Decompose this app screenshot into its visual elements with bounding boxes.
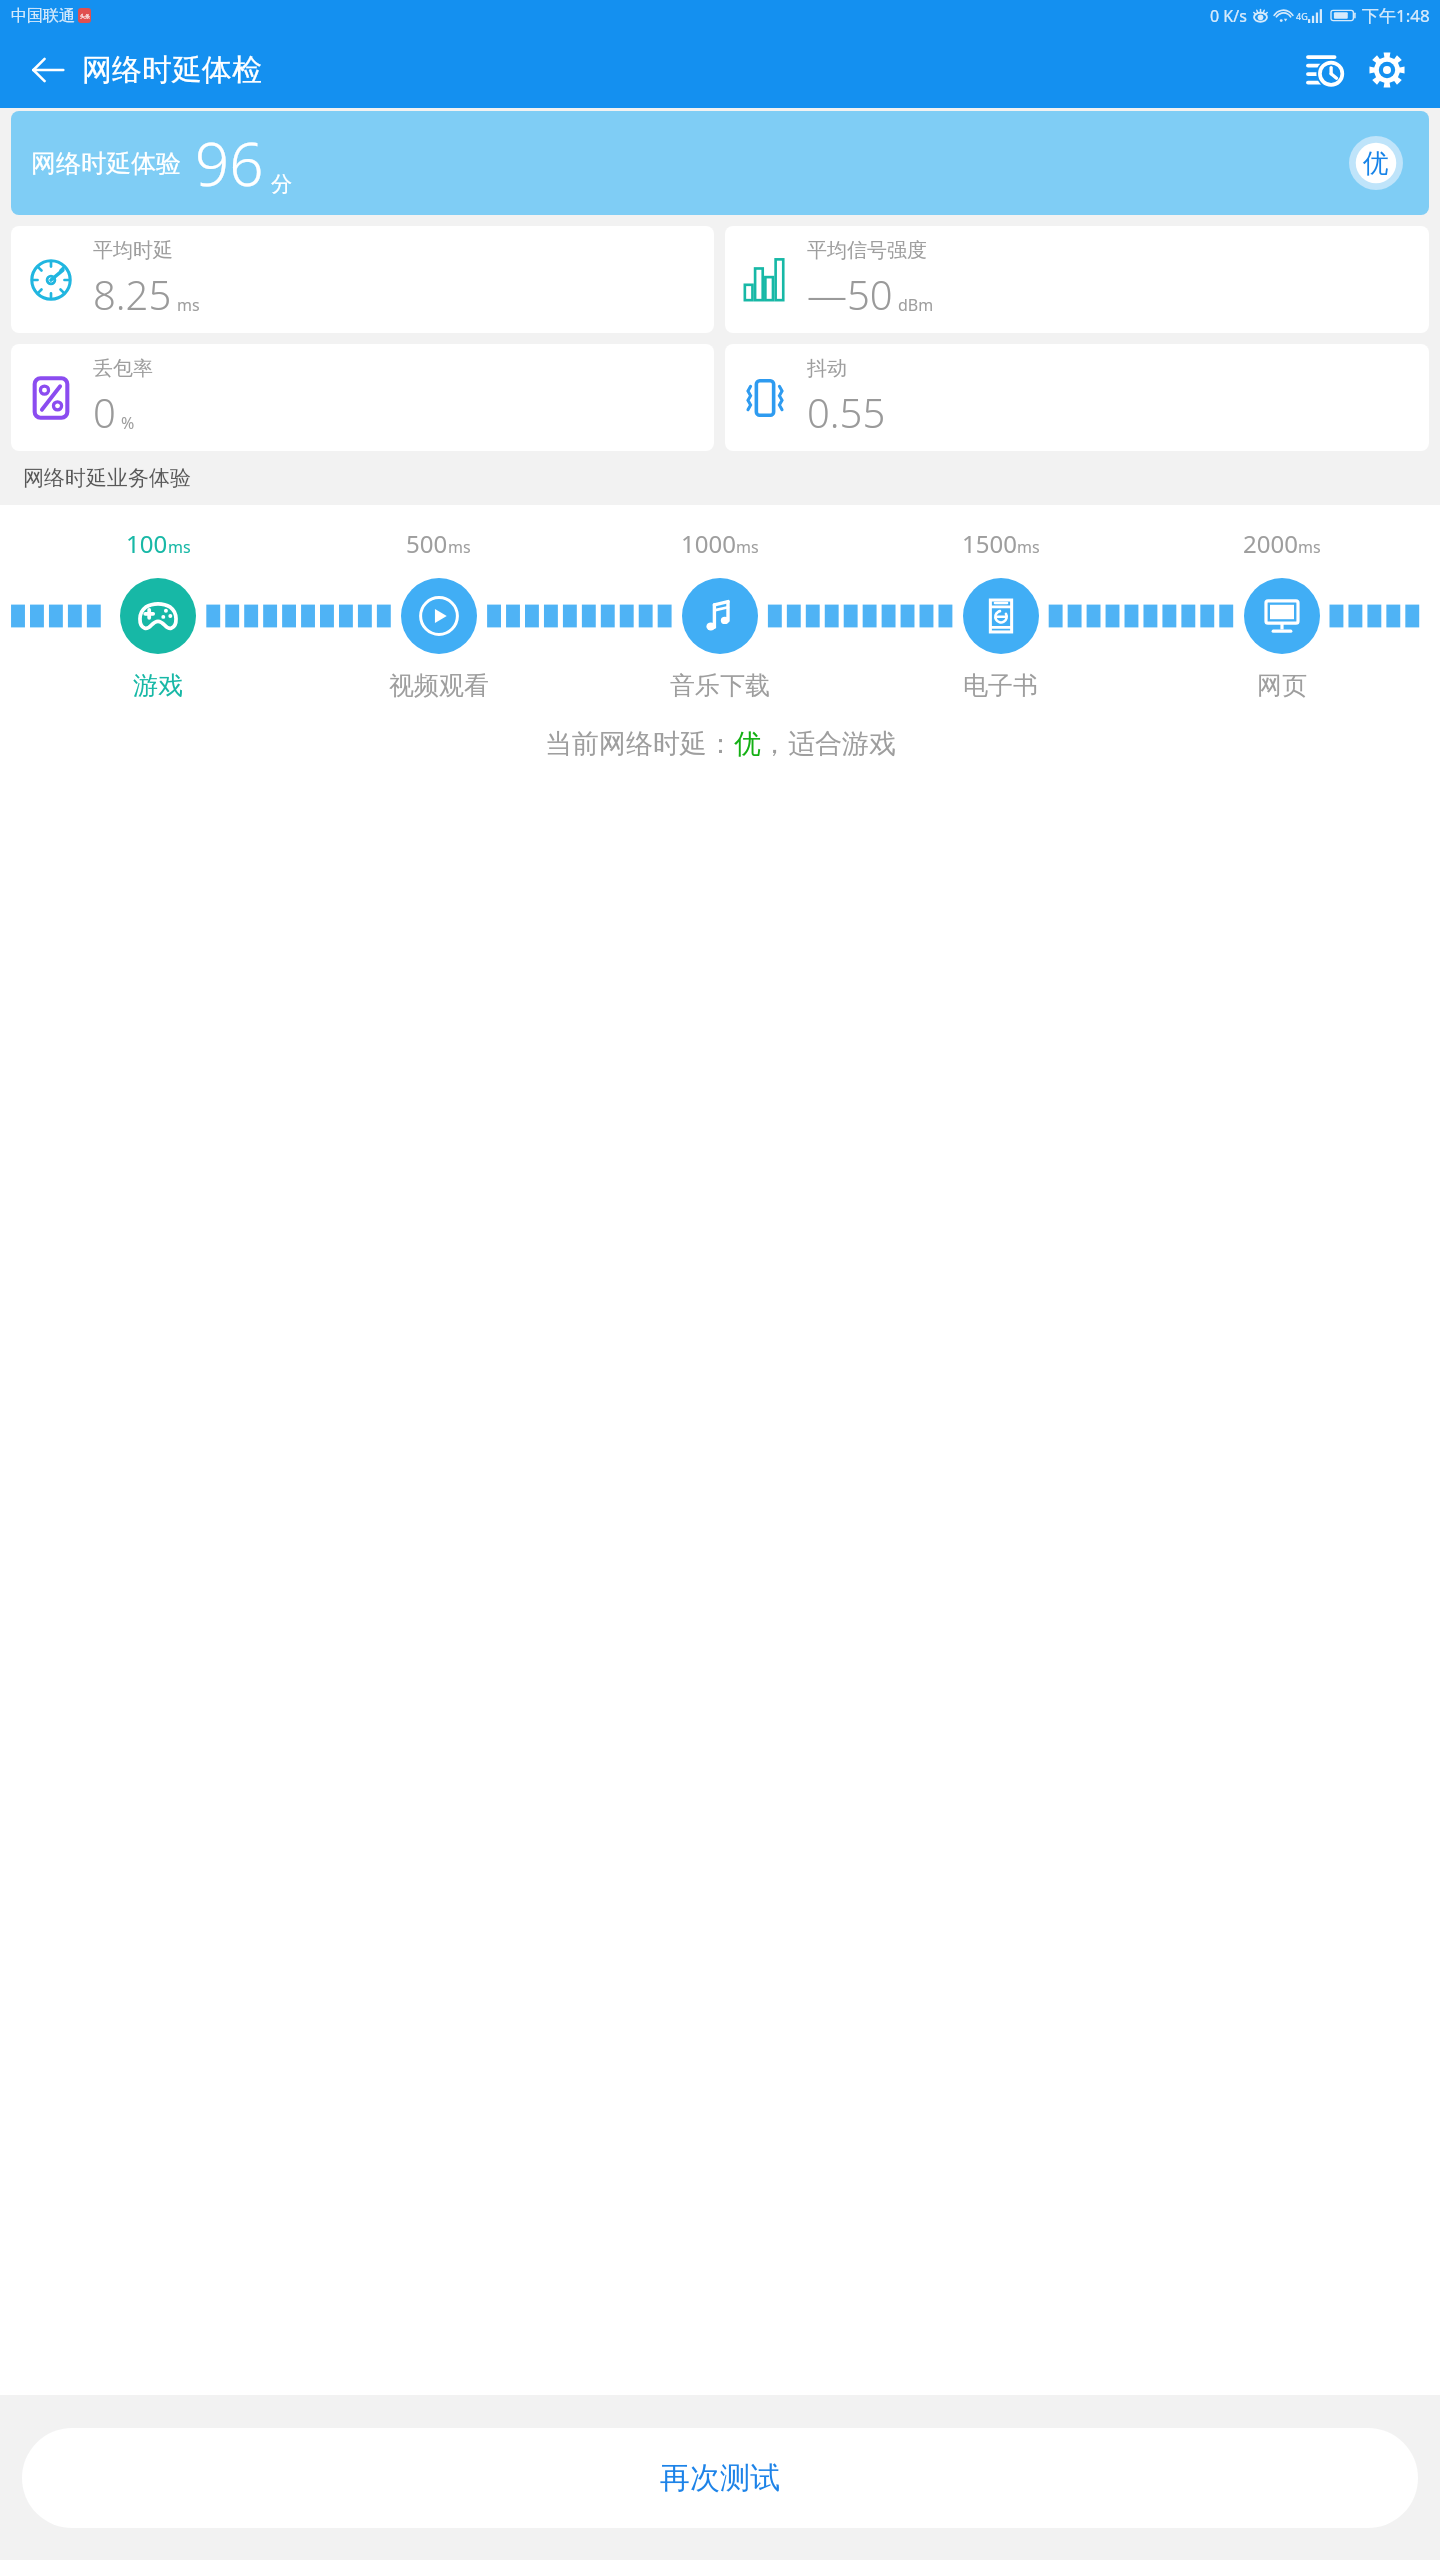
staticText: 网络时延体验 (31, 148, 181, 179)
staticText: ms (736, 536, 759, 558)
staticText: 4G (1296, 10, 1308, 22)
button[interactable]: 平均信号强度 (725, 226, 1429, 333)
button[interactable]: 电子书 (963, 578, 1039, 654)
staticText: 96 (195, 122, 264, 204)
staticText: ，适合游戏 (761, 727, 896, 761)
staticText: 当前网络时延： (545, 727, 734, 761)
staticText: ms (448, 536, 471, 558)
staticText: 头条 (80, 13, 90, 19)
staticText: 网络时延体检 (82, 51, 262, 89)
staticText: 抖动 (807, 356, 847, 381)
button[interactable]: 丢包率 (11, 344, 714, 451)
staticText: 100 (126, 527, 168, 560)
button[interactable]: 游戏 (120, 578, 196, 654)
staticText: 0 K/s (1210, 5, 1247, 27)
staticText: ms (168, 536, 191, 558)
staticText: dBm (898, 294, 934, 316)
staticText: 1500 (962, 527, 1017, 560)
staticText: 丢包率 (93, 356, 153, 381)
button[interactable]: Settings (1356, 39, 1418, 101)
staticText: % (121, 412, 135, 434)
staticText: ms (177, 294, 200, 316)
staticText: 游戏 (133, 670, 183, 701)
button[interactable]: 平均时延 (11, 226, 714, 333)
button[interactable]: 音乐下载 (682, 578, 758, 654)
button[interactable]: 网络时延体验 (11, 111, 1429, 215)
staticText: 0.55 (807, 385, 886, 439)
staticText: 再次测试 (660, 2459, 780, 2497)
staticText: 1000 (681, 527, 736, 560)
staticText: 平均信号强度 (807, 238, 927, 263)
staticText: 电子书 (963, 670, 1038, 701)
button[interactable]: 再次测试 (22, 2428, 1418, 2528)
staticText: 下午1:48 (1362, 4, 1430, 27)
staticText: 8.25 (93, 267, 172, 321)
staticText: 网络时延业务体验 (23, 465, 191, 491)
staticText: 中国联通 (11, 6, 75, 26)
button[interactable]: 抖动 (725, 344, 1429, 451)
button[interactable]: 视频观看 (401, 578, 477, 654)
staticText: 优 (1363, 147, 1389, 180)
button[interactable]: History (1294, 39, 1356, 101)
staticText: 平均时延 (93, 238, 173, 263)
staticText: 分 (271, 171, 292, 197)
button[interactable]: 网页 (1244, 578, 1320, 654)
staticText: ms (1298, 536, 1321, 558)
staticText: ms (1017, 536, 1040, 558)
staticText: 500 (406, 527, 448, 560)
button[interactable]: Back (20, 42, 76, 98)
staticText: 0 (93, 385, 116, 439)
staticText: 音乐下载 (670, 670, 770, 701)
staticText: 2000 (1243, 527, 1298, 560)
staticText: 视频观看 (389, 670, 489, 701)
staticText: 网页 (1257, 670, 1307, 701)
staticText: —50 (807, 267, 893, 321)
staticText: 优 (734, 727, 761, 761)
